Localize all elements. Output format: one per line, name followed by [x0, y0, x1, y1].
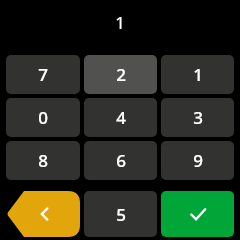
- button[interactable]: 7: [6, 55, 80, 94]
- staticText: 1: [193, 63, 203, 86]
- button[interactable]: 5: [84, 191, 157, 237]
- staticText: 0: [38, 106, 48, 129]
- button[interactable]: 9: [161, 141, 234, 180]
- button[interactable]: Back: [6, 191, 80, 237]
- staticText: 1: [115, 11, 125, 34]
- staticText: 6: [116, 149, 126, 172]
- button[interactable]: 1: [161, 55, 234, 94]
- staticText: 5: [116, 203, 126, 226]
- staticText: 9: [193, 149, 203, 172]
- button[interactable]: 4: [84, 98, 157, 137]
- staticText: 4: [116, 106, 126, 129]
- staticText: 8: [38, 149, 48, 172]
- staticText: 3: [193, 106, 203, 129]
- staticText: 2: [116, 63, 126, 86]
- button[interactable]: 3: [161, 98, 234, 137]
- button[interactable]: 6: [84, 141, 157, 180]
- staticText: 7: [38, 63, 48, 86]
- button[interactable]: Confirm: [161, 191, 234, 237]
- button[interactable]: 0: [6, 98, 80, 137]
- button[interactable]: 8: [6, 141, 80, 180]
- button[interactable]: 2: [84, 55, 157, 94]
